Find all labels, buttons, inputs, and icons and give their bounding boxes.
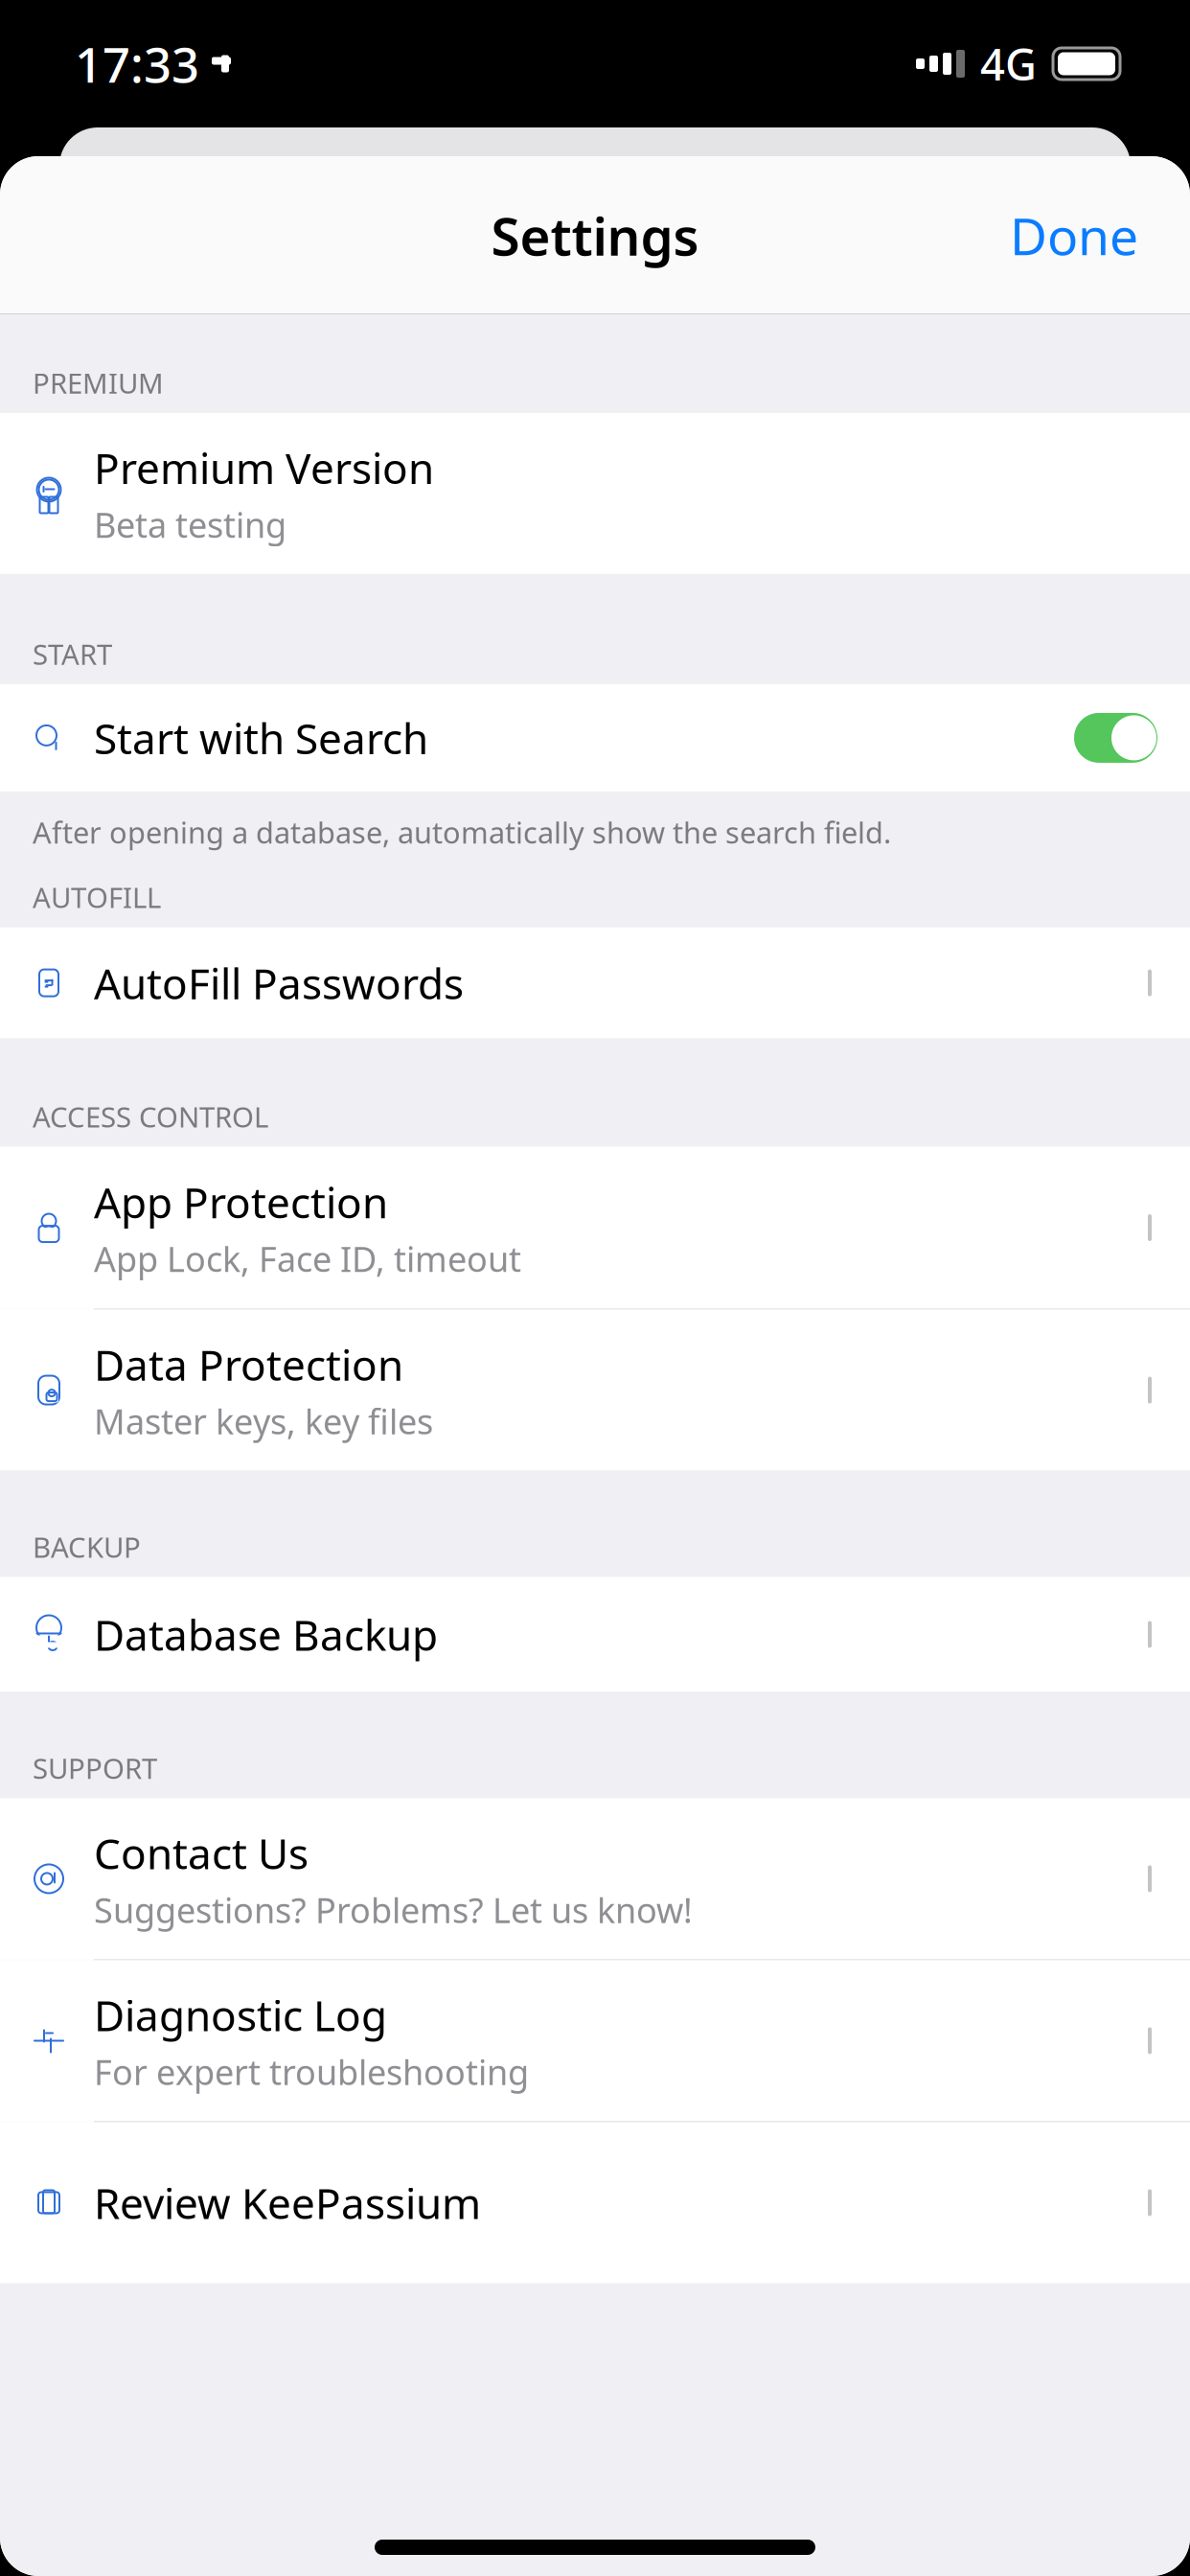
button[interactable]: AutoFill Passwords [0,927,1190,1038]
staticText: ACCESS CONTROL [33,1098,268,1135]
staticText: App Protection [94,1174,388,1230]
staticText: SUPPORT [33,1749,157,1787]
staticText: Diagnostic Log [94,1987,387,2043]
button[interactable]: Start with Search [1074,713,1157,763]
staticText: AUTOFILL [33,878,161,916]
staticText: START [33,635,112,673]
staticText: Premium Version [94,440,434,496]
staticText: PREMIUM [33,364,164,402]
button[interactable]: Database Backup [0,1577,1190,1692]
staticText: After opening a database, automatically … [33,813,891,852]
staticText: 17:33 [75,32,199,96]
staticText: Data Protection [94,1336,403,1392]
staticText: BACKUP [33,1528,141,1565]
button[interactable]: Start with Search [0,684,1190,791]
button[interactable]: App Protection [0,1147,1190,1309]
button[interactable]: Premium Version [0,413,1190,574]
staticText: Start with Search [94,710,428,766]
button[interactable]: Data Protection [0,1310,1190,1471]
staticText: Review KeePassium [94,2175,481,2231]
staticText: Master keys, key files [94,1398,433,1444]
button[interactable]: Contact Us [0,1798,1190,1959]
staticText: Settings [491,200,699,270]
button[interactable]: Review KeePassium [0,2122,1190,2283]
staticText: App Lock, Face ID, timeout [94,1236,521,1281]
staticText: For expert troubleshooting [94,2049,529,2095]
button[interactable]: Diagnostic Log [0,1960,1190,2121]
staticText: Done [1010,201,1138,269]
staticText: 4G [980,35,1037,93]
button[interactable]: Done [991,188,1157,283]
staticText: Contact Us [94,1825,309,1881]
staticText: Suggestions? Problems? Let us know! [94,1887,693,1933]
staticText: Beta testing [94,501,286,547]
staticText: Database Backup [94,1606,438,1662]
staticText: AutoFill Passwords [94,955,464,1011]
